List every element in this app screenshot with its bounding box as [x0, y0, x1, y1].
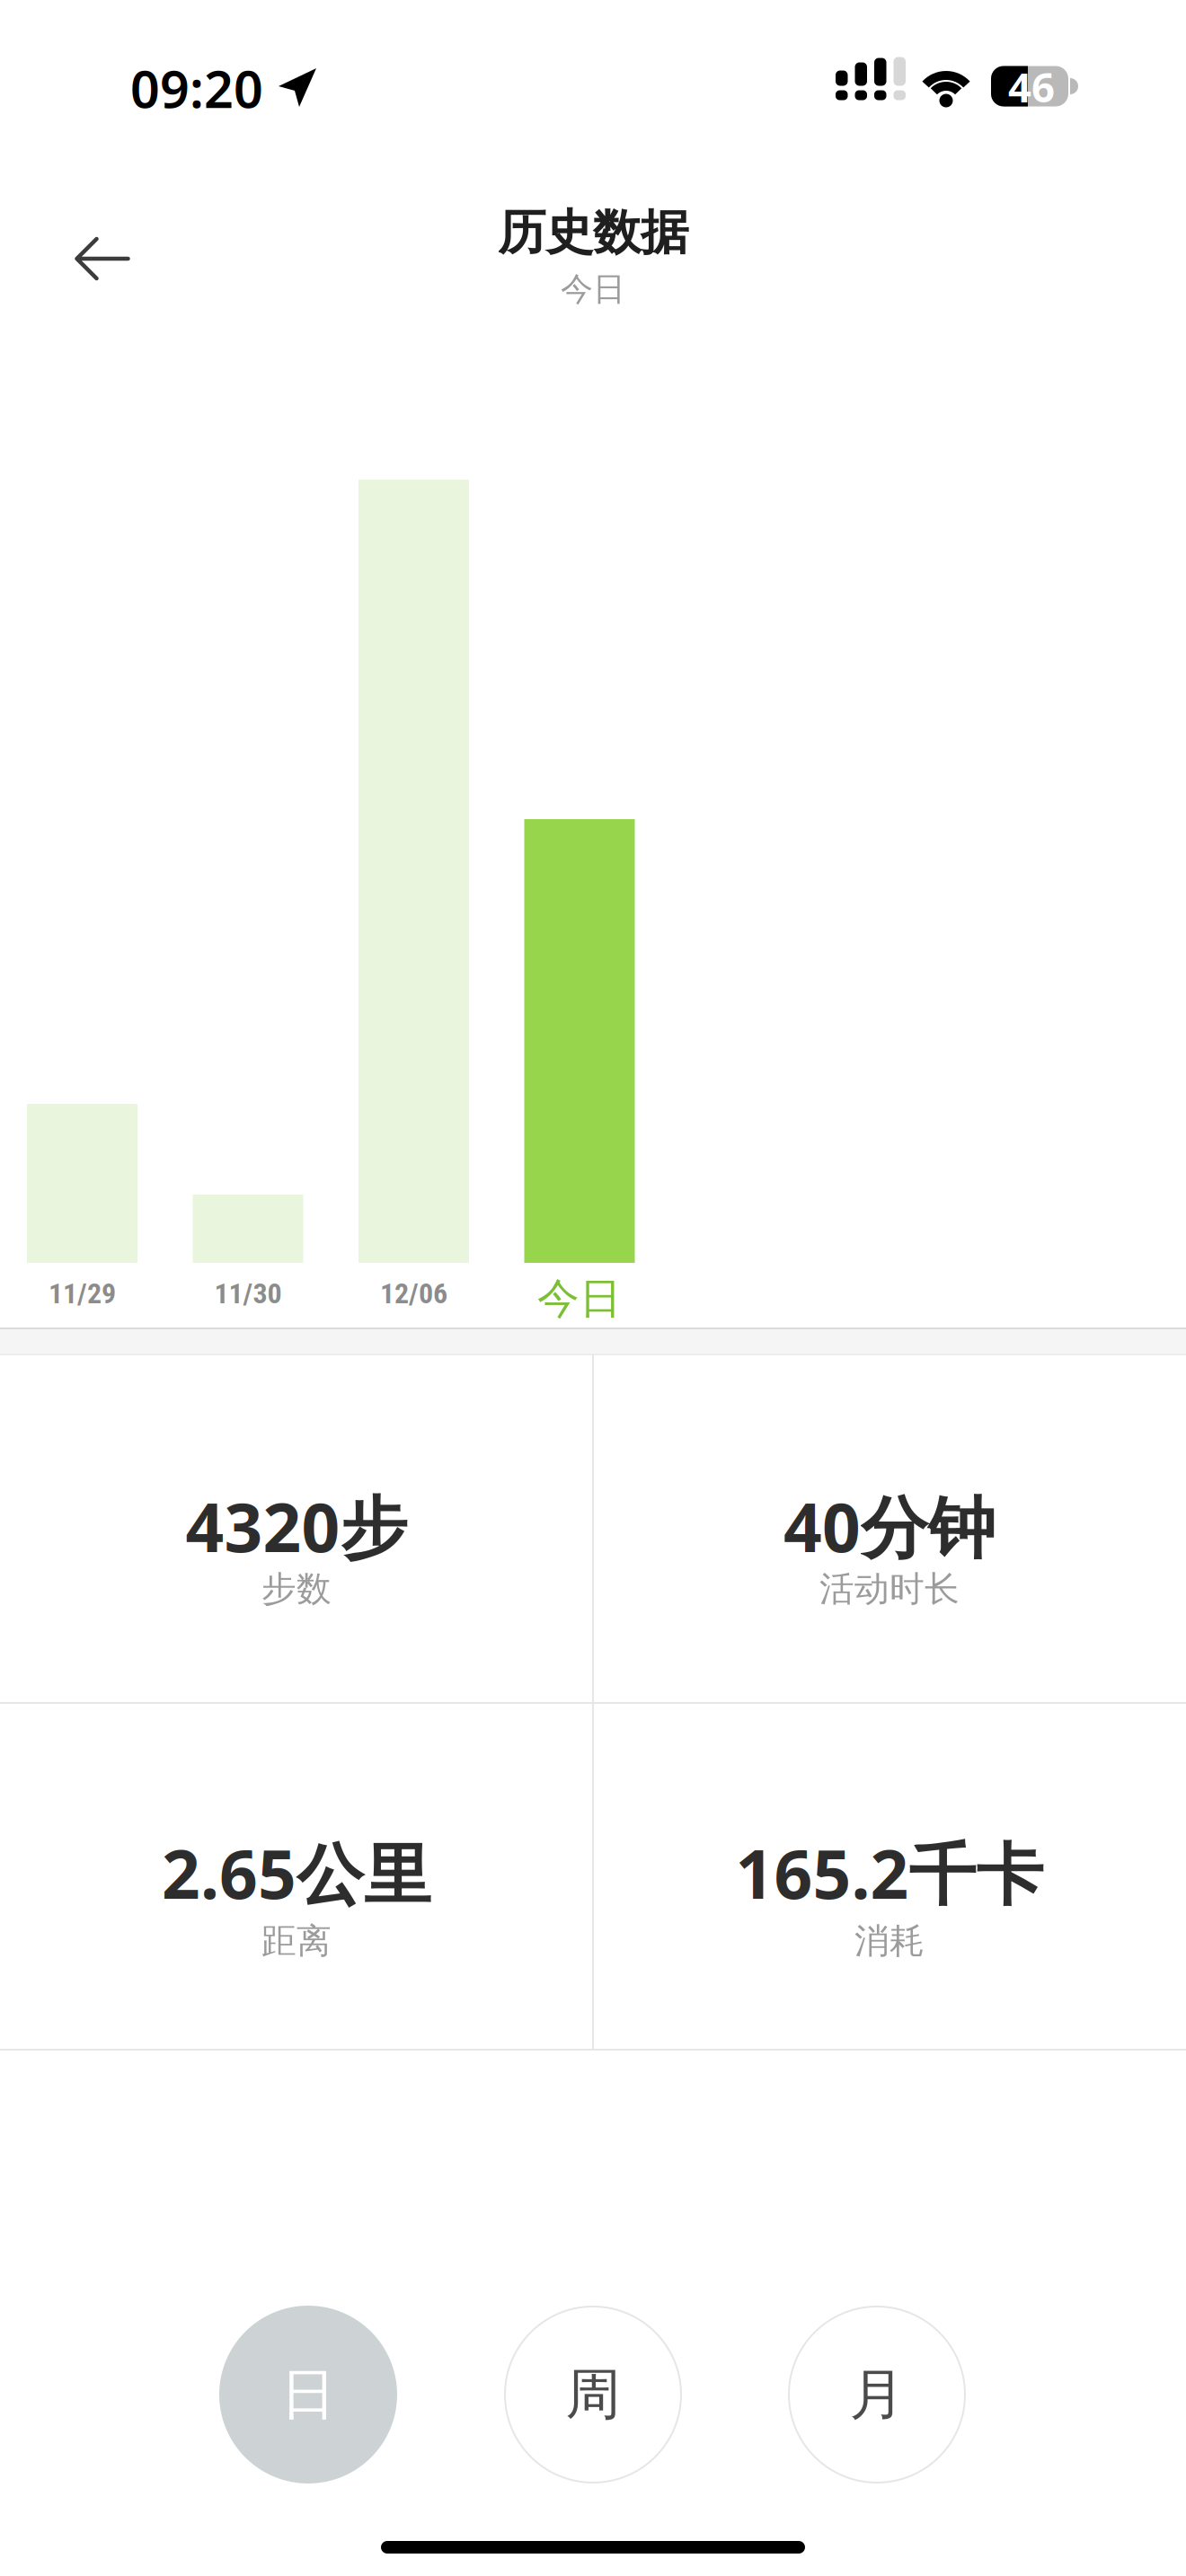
button[interactable]: 日 — [219, 2306, 397, 2483]
staticText: 40分钟 — [783, 1481, 996, 1571]
button[interactable]: 周 — [504, 2306, 682, 2483]
button[interactable]: 12/06 — [358, 480, 469, 1325]
button[interactable]: 今日 — [524, 819, 635, 1325]
staticText: 今日 — [561, 269, 625, 309]
staticText: 历史数据 — [498, 203, 688, 262]
staticText: 日 — [281, 2361, 336, 2428]
staticText: 12/06 — [380, 1277, 447, 1310]
staticText: 2.65公里 — [162, 1828, 431, 1917]
staticText: 今日 — [537, 1273, 622, 1324]
button[interactable]: 11/29 — [27, 1104, 137, 1325]
staticText: 46 — [1008, 60, 1055, 114]
button[interactable]: 月 — [788, 2306, 966, 2483]
staticText: 4320步 — [186, 1481, 407, 1571]
staticText: 步数 — [261, 1568, 332, 1610]
staticText: 11/29 — [49, 1277, 116, 1310]
staticText: 周 — [566, 2361, 620, 2428]
staticText: 11/30 — [214, 1277, 282, 1310]
button[interactable]: 11/30 — [193, 1195, 303, 1325]
button[interactable] — [53, 214, 152, 304]
staticText: 消耗 — [854, 1920, 925, 1962]
staticText: 09:20 — [130, 54, 263, 122]
staticText: 165.2千卡 — [735, 1828, 1044, 1917]
staticText: 月 — [850, 2361, 904, 2428]
staticText: 距离 — [261, 1920, 332, 1962]
staticText: 活动时长 — [819, 1568, 960, 1610]
